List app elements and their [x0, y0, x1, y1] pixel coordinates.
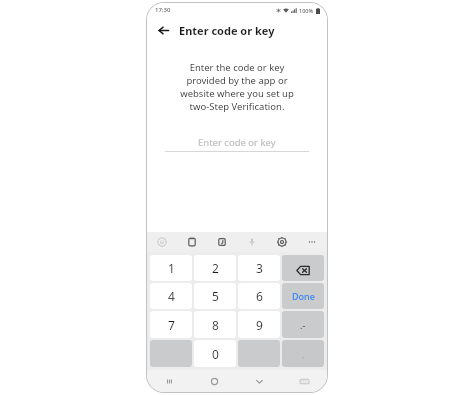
staticText: Done — [292, 290, 315, 302]
button[interactable]: 8 — [194, 311, 236, 338]
staticText: 17:30 — [155, 6, 171, 14]
button[interactable]: 6 — [238, 283, 280, 309]
staticText: 2 — [212, 260, 219, 276]
button[interactable]: Hide keyboard — [237, 370, 282, 392]
button[interactable]: More options — [297, 232, 327, 252]
staticText: 100% — [299, 7, 314, 14]
button[interactable]: .- — [282, 311, 324, 338]
staticText: , — [302, 348, 305, 360]
staticText: 5 — [212, 288, 219, 304]
button[interactable]: 1 — [150, 255, 192, 281]
button[interactable]: Backspace — [282, 255, 324, 281]
staticText: Enter code or key — [198, 136, 276, 149]
button[interactable]: 3 — [238, 255, 280, 281]
button[interactable]: 4 — [150, 283, 192, 309]
button[interactable]: Back — [153, 20, 173, 40]
staticText: Enter the code or key provided by the ap… — [180, 61, 294, 113]
button[interactable]: 7 — [150, 311, 192, 338]
button[interactable]: Clipboard — [177, 232, 207, 252]
button[interactable]: 9 — [238, 311, 280, 338]
button[interactable]: Emoji — [147, 232, 177, 252]
staticText: 3 — [256, 260, 263, 276]
button[interactable]: Stickers — [207, 232, 237, 252]
staticText: 8 — [212, 317, 219, 333]
staticText: Enter code or key — [179, 23, 275, 38]
button[interactable]: Recents — [147, 370, 192, 392]
staticText: 1 — [168, 260, 175, 276]
button[interactable]: Done — [282, 283, 324, 309]
staticText: 9 — [256, 317, 263, 333]
staticText: .- — [300, 319, 306, 331]
button[interactable]: Enter code or key — [165, 132, 309, 152]
button[interactable]: 0 — [194, 340, 236, 367]
button[interactable]: Voice input — [237, 232, 267, 252]
staticText: 0 — [212, 346, 219, 362]
staticText: 6 — [256, 288, 263, 304]
button[interactable]: Home — [192, 370, 237, 392]
button[interactable]: Switch keyboard — [282, 370, 327, 392]
button[interactable]: 2 — [194, 255, 236, 281]
button[interactable]: 5 — [194, 283, 236, 309]
staticText: 4 — [168, 288, 175, 304]
staticText: 7 — [168, 317, 175, 333]
button[interactable]: Keyboard settings — [267, 232, 297, 252]
